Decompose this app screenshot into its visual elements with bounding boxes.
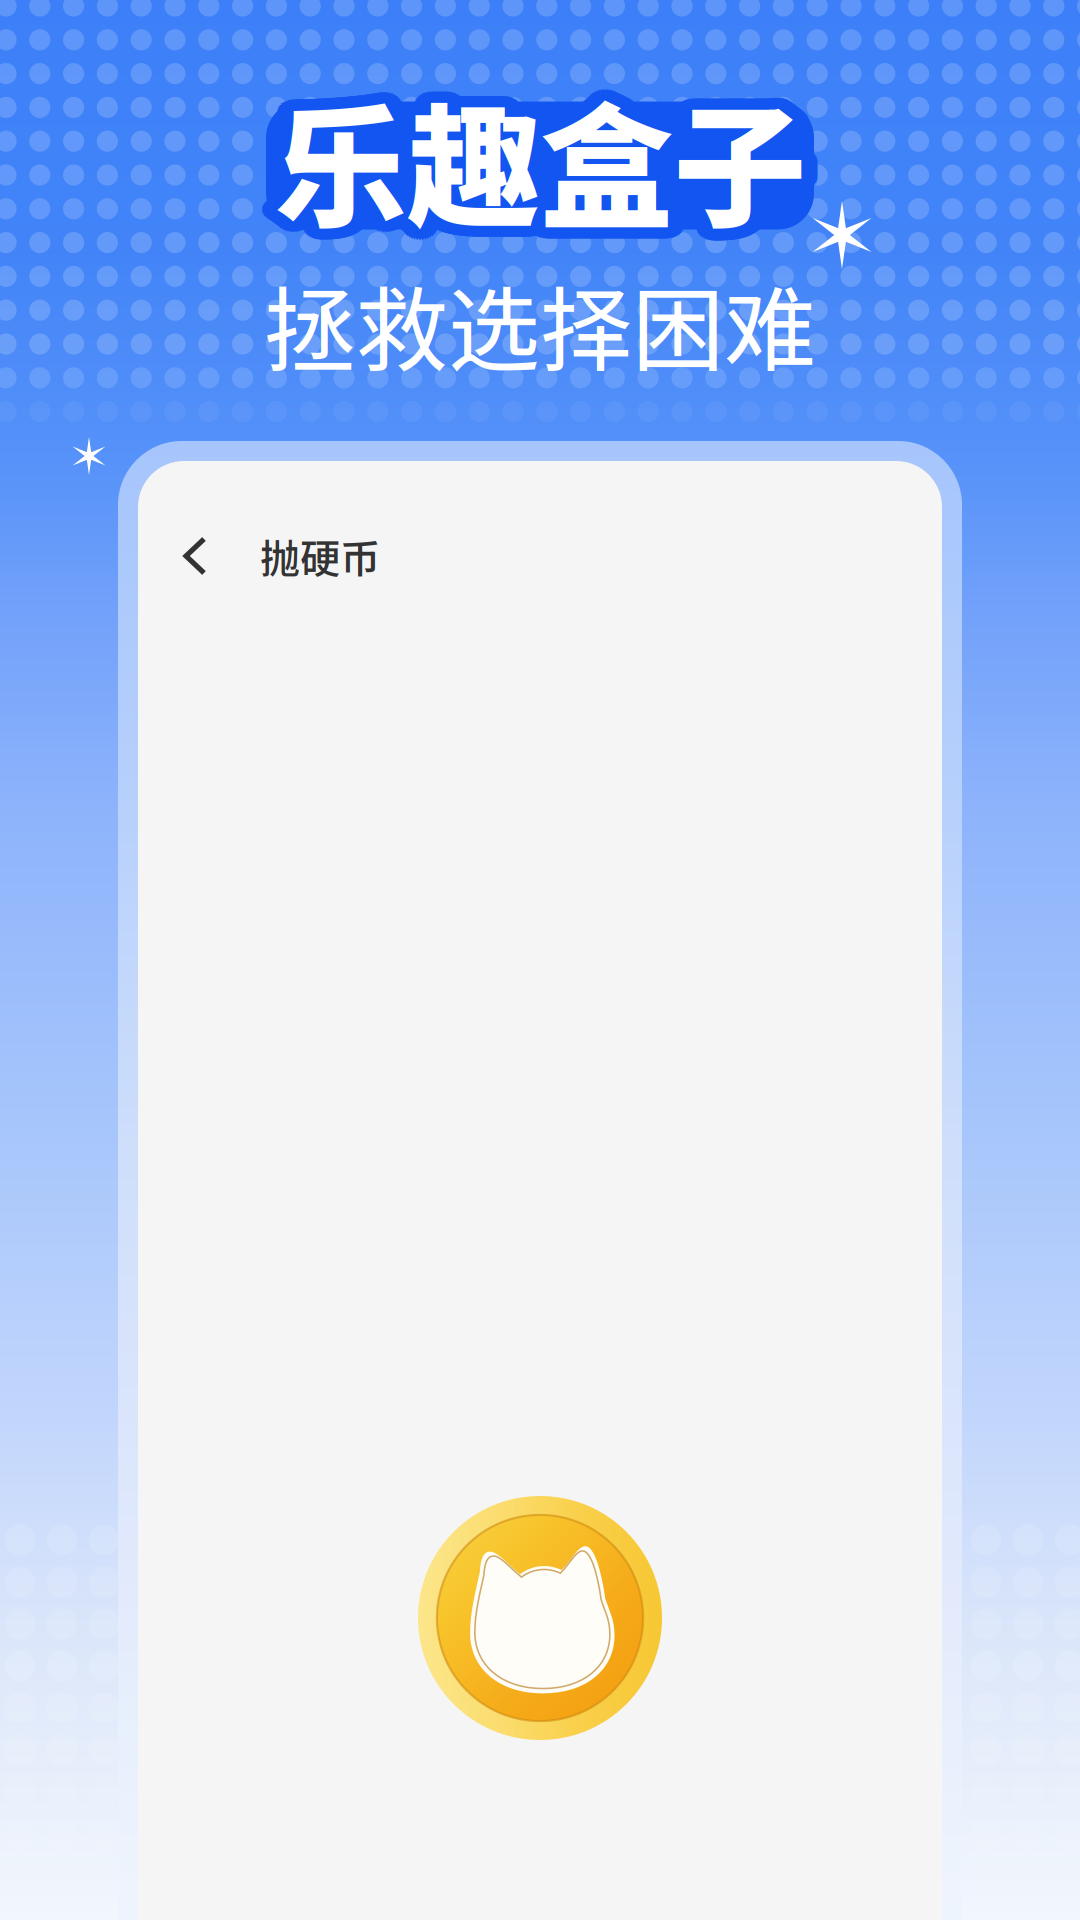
button[interactable]: 返回 [167,518,225,594]
staticText: 乐趣盒子 [271,73,803,266]
staticText: 乐趣盒子 [290,60,822,253]
staticText: 乐趣盒子 [282,52,814,245]
staticText: 乐趣盒子 [259,66,791,259]
staticText: 乐趣盒子 [289,58,821,251]
staticText: 乐趣盒子 [277,73,809,266]
staticText: 乐趣盒子 [266,71,798,265]
button[interactable]: 抛硬币 [418,1496,662,1740]
staticText: 乐趣盒子 [274,62,806,255]
staticText: 乐趣盒子 [274,73,806,266]
staticText: 乐趣盒子 [288,56,820,250]
staticText: 拯救选择困难 [264,257,816,391]
staticText: 乐趣盒子 [258,64,790,257]
staticText: 乐趣盒子 [274,51,806,244]
staticText: 乐趣盒子 [271,51,803,244]
staticText: 乐趣盒子 [282,71,814,265]
staticText: 乐趣盒子 [258,62,790,255]
staticText: 乐趣盒子 [286,55,818,248]
staticText: 乐趣盒子 [284,53,816,247]
staticText: 乐趣盒子 [286,69,818,262]
staticText: 乐趣盒子 [260,67,792,261]
staticText: 乐趣盒子 [279,52,811,245]
staticText: 乐趣盒子 [262,69,794,262]
staticText: 乐趣盒子 [284,70,816,263]
staticText: 乐趣盒子 [288,67,820,261]
staticText: 乐趣盒子 [290,64,822,257]
staticText: 乐趣盒子 [266,52,798,245]
staticText: 乐趣盒子 [290,62,822,255]
staticText: 乐趣盒子 [277,51,809,244]
staticText: 乐趣盒子 [264,53,796,247]
staticText: 乐趣盒子 [262,55,794,248]
staticText: 乐趣盒子 [279,72,811,265]
staticText: 乐趣盒子 [268,72,800,265]
staticText: 乐趣盒子 [260,56,792,250]
staticText: 乐趣盒子 [264,70,796,263]
staticText: 乐趣盒子 [268,52,800,245]
staticText: 乐趣盒子 [289,66,821,259]
staticText: 抛硬币 [260,527,380,585]
staticText: 乐趣盒子 [259,58,791,251]
staticText: 乐趣盒子 [258,60,790,253]
